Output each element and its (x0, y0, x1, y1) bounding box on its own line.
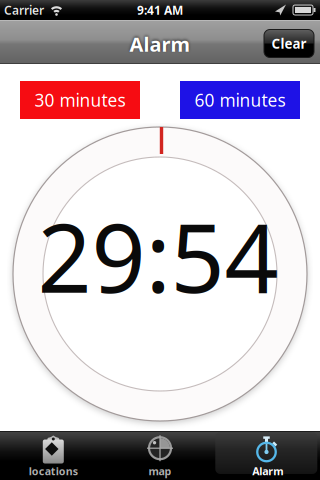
button[interactable]: locations (0, 431, 106, 480)
button[interactable]: 60 minutes (180, 81, 300, 119)
button[interactable]: Alarm (215, 431, 317, 480)
staticText: Carrier (4, 2, 44, 18)
staticText: map (148, 464, 171, 478)
staticText: 9:41 AM (137, 2, 183, 18)
staticText: 60 minutes (194, 88, 285, 111)
staticText: 30 minutes (34, 88, 125, 111)
staticText: locations (29, 464, 78, 478)
staticText: Clear (271, 35, 306, 52)
button[interactable]: 30 minutes (20, 81, 140, 119)
button[interactable]: map (107, 431, 213, 480)
staticText: 29:54 (37, 193, 278, 319)
button[interactable]: Clear (264, 29, 314, 57)
staticText: Alarm (252, 464, 283, 478)
staticText: Alarm (129, 31, 190, 57)
